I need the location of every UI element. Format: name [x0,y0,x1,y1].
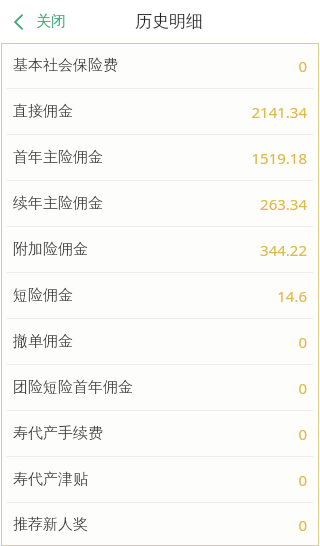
staticText: 0 [298,424,307,444]
staticText: 直接佣金 [13,102,73,121]
staticText: 团险短险首年佣金 [13,378,133,397]
staticText: 2141.34 [251,102,307,122]
button[interactable]: 寿代产津贴 [1,457,319,502]
button[interactable]: 寿代产手续费 [1,411,319,456]
staticText: 附加险佣金 [13,240,88,259]
button[interactable]: 基本社会保险费 [1,43,319,88]
button[interactable]: 短险佣金 [1,273,319,318]
staticText: 关闭 [36,12,66,31]
staticText: 撤单佣金 [13,332,73,351]
staticText: 寿代产津贴 [13,470,88,489]
button[interactable]: Back [8,8,70,35]
staticText: 短险佣金 [13,286,73,305]
button[interactable]: 附加险佣金 [1,227,319,272]
button[interactable]: 撤单佣金 [1,319,319,364]
staticText: 首年主险佣金 [13,148,103,167]
staticText: 历史明细 [135,11,203,32]
staticText: 基本社会保险费 [13,56,118,75]
staticText: 0 [298,515,307,535]
staticText: 263.34 [260,194,307,214]
other: Back [12,13,26,31]
staticText: 14.6 [277,286,307,306]
staticText: 0 [298,378,307,398]
button[interactable]: 团险短险首年佣金 [1,365,319,410]
button[interactable]: 直接佣金 [1,89,319,134]
staticText: 续年主险佣金 [13,194,103,213]
button[interactable]: 续年主险佣金 [1,181,319,226]
staticText: 0 [298,332,307,352]
button[interactable]: 推荐新人奖 [1,503,319,546]
staticText: 推荐新人奖 [13,515,88,534]
staticText: 0 [298,56,307,76]
staticText: 344.22 [260,240,307,260]
staticText: 0 [298,470,307,490]
staticText: 寿代产手续费 [13,424,103,443]
button[interactable]: 首年主险佣金 [1,135,319,180]
staticText: 1519.18 [251,148,307,168]
